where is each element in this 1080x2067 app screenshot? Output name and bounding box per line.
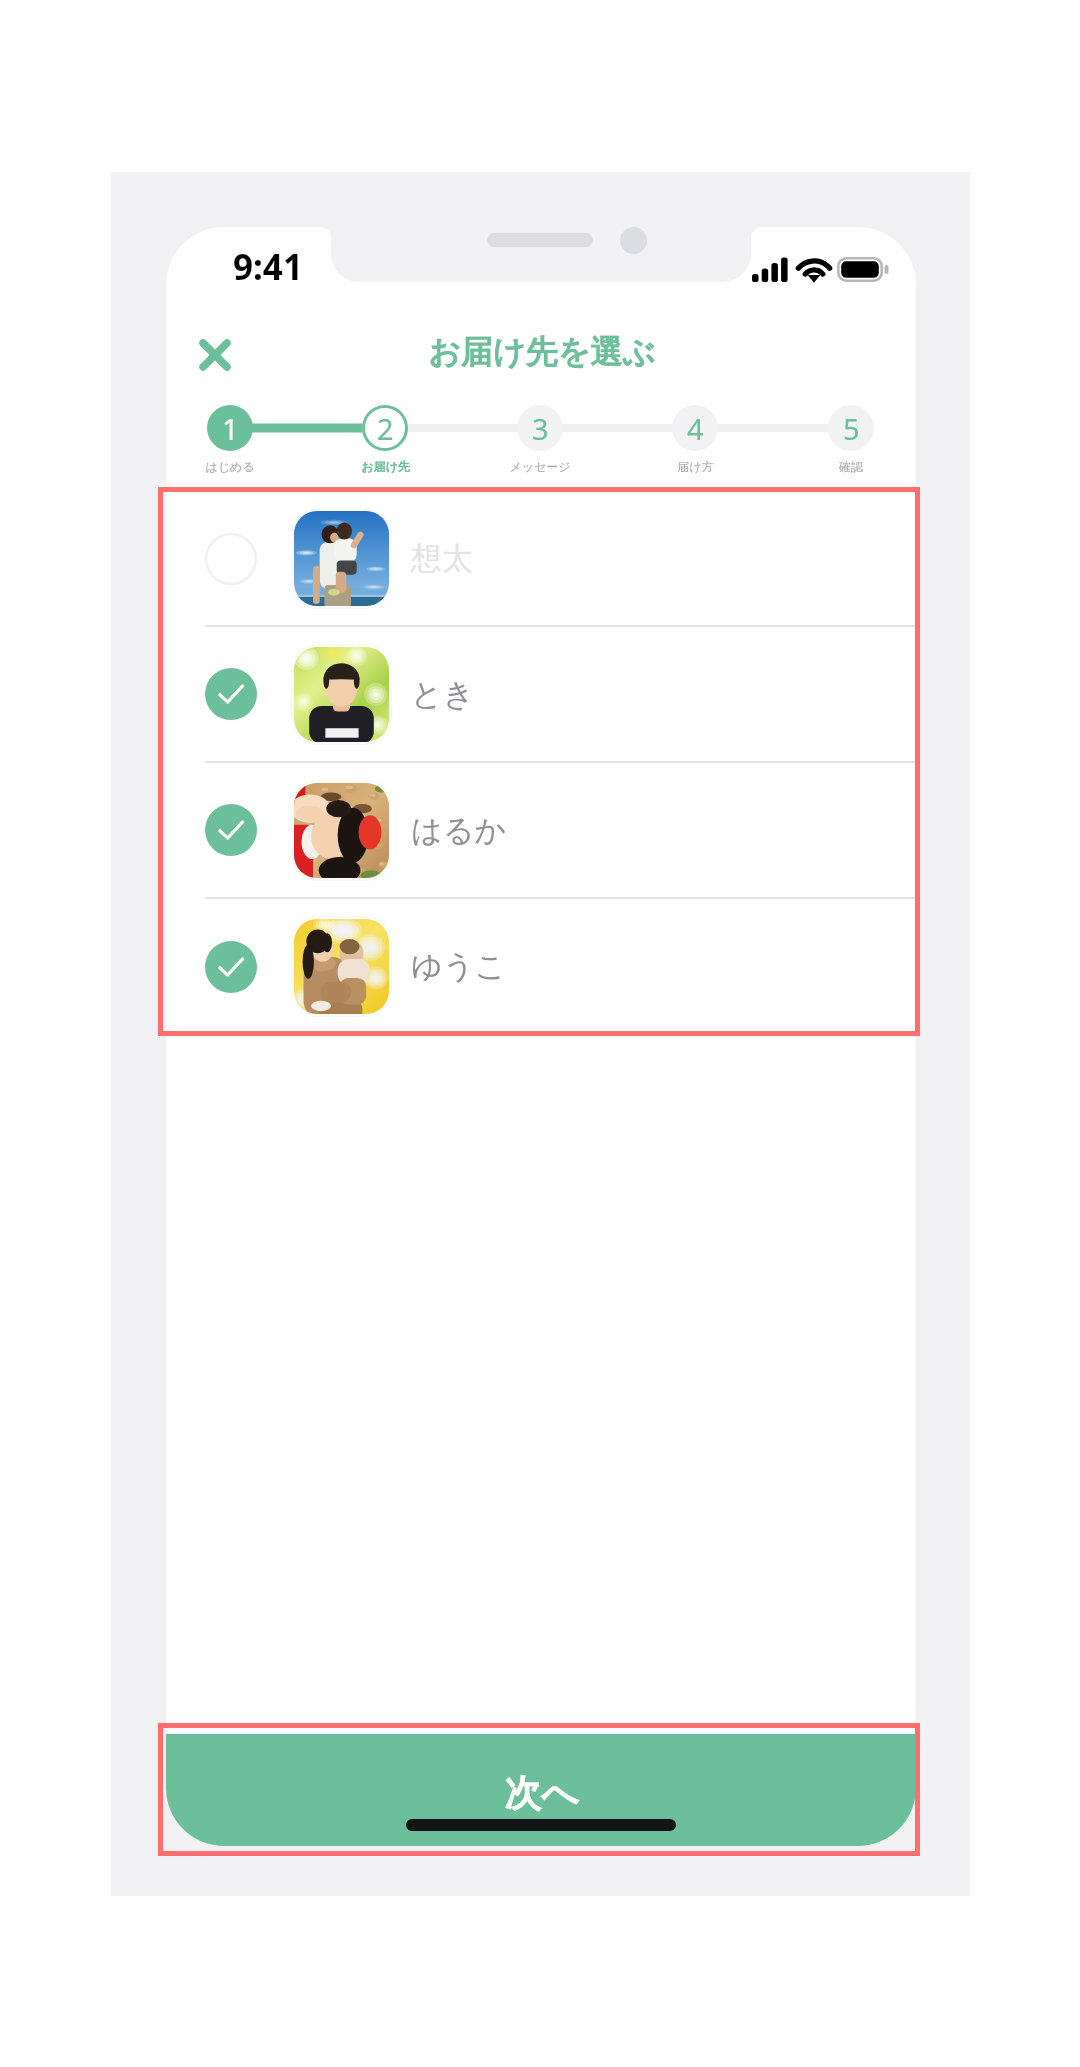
button[interactable]: 想太 (166, 487, 916, 625)
staticText: 確認 (839, 459, 863, 474)
staticText: メッセージ (509, 459, 571, 474)
button[interactable]: 2 (362, 405, 408, 451)
button[interactable]: 1 (207, 405, 253, 451)
button[interactable]: 次へ (166, 1734, 916, 1846)
button[interactable]: 3 (517, 405, 563, 451)
staticText: お届け先 (361, 459, 410, 474)
button[interactable]: とき (166, 627, 916, 761)
button[interactable]: はるか (166, 763, 916, 897)
button[interactable]: ゆうこ (166, 899, 916, 1034)
staticText: とき (411, 675, 475, 714)
button[interactable]: 4 (672, 405, 718, 451)
staticText: 4 (687, 409, 704, 448)
staticText: 3 (532, 409, 549, 448)
staticText: ゆうこ (411, 947, 507, 986)
staticText: 届け方 (677, 459, 714, 474)
staticText: 9:41 (233, 243, 303, 291)
button[interactable]: 閉じる (175, 315, 255, 395)
staticText: はるか (411, 811, 507, 850)
staticText: 1 (222, 409, 239, 448)
staticText: はじめる (205, 459, 255, 474)
staticText: 次へ (504, 1770, 579, 1817)
button[interactable]: 5 (828, 405, 874, 451)
staticText: 2 (377, 409, 394, 448)
staticText: 想太 (411, 539, 473, 578)
staticText: お届け先を選ぶ (428, 332, 655, 372)
staticText: 5 (843, 409, 860, 448)
